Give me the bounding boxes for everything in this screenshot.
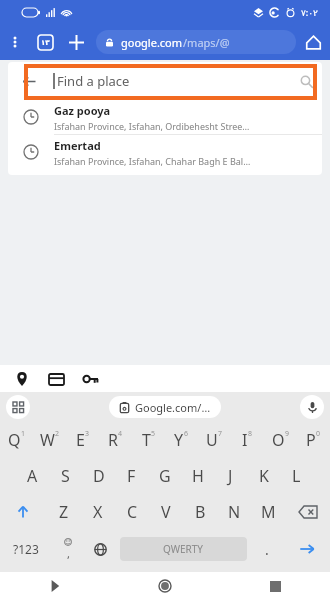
staticText: G — [159, 465, 171, 487]
staticText: F — [127, 465, 136, 487]
button[interactable]: P — [297, 422, 330, 458]
button[interactable]: B — [183, 494, 217, 530]
staticText: Z — [59, 501, 69, 523]
button[interactable]: Voice input — [300, 395, 324, 419]
staticText: 7 — [218, 429, 223, 439]
button[interactable]: google.com — [96, 30, 296, 54]
staticText: Isfahan Province, Isfahan, Chahar Bagh E… — [54, 155, 251, 167]
staticText: I — [242, 429, 248, 451]
staticText: P — [306, 429, 316, 451]
staticText: D — [93, 465, 105, 487]
button[interactable]: Search — [294, 69, 318, 93]
staticText: ?123 — [13, 541, 39, 557]
button[interactable]: O — [264, 422, 297, 458]
staticText: ۱۳ — [41, 39, 50, 47]
button[interactable]: K — [247, 458, 280, 494]
staticText: 1 — [21, 429, 26, 439]
button[interactable]: Passwords — [78, 367, 102, 391]
button[interactable]: Back — [18, 70, 40, 92]
staticText: 2 — [55, 429, 60, 439]
button[interactable]: V — [149, 494, 183, 530]
button[interactable]: R — [99, 422, 132, 458]
staticText: Isfahan Province, Isfahan, Ordibehesht S… — [54, 120, 250, 132]
button[interactable]: Shift — [0, 494, 46, 530]
button[interactable]: Payment methods — [44, 367, 68, 391]
button[interactable]: G — [148, 458, 181, 494]
button[interactable]: Emertad — [8, 135, 322, 169]
staticText: 3 — [85, 429, 90, 439]
staticText: QWERTY — [163, 542, 204, 556]
staticText: U — [206, 429, 218, 451]
staticText: B — [195, 501, 206, 523]
button[interactable]: X — [81, 494, 115, 530]
button[interactable]: Tabs — [30, 27, 60, 57]
staticText: Find a place — [57, 72, 130, 90]
button[interactable]: Home — [110, 572, 220, 600]
staticText: W — [40, 429, 55, 451]
button[interactable]: J — [214, 458, 247, 494]
button[interactable]: ?123 — [0, 530, 51, 568]
button[interactable]: Backspace — [285, 494, 330, 530]
button[interactable]: W — [33, 422, 66, 458]
button[interactable]: Home — [296, 25, 330, 59]
staticText: M — [261, 501, 276, 523]
button[interactable]: Google.com/… — [109, 396, 221, 418]
staticText: 4 — [118, 429, 123, 439]
staticText: 6 — [184, 429, 189, 439]
staticText: O — [272, 429, 285, 451]
staticText: K — [259, 465, 269, 487]
staticText: ۷:۰۲ — [301, 6, 318, 18]
staticText: C — [127, 501, 138, 523]
staticText: Emertad — [54, 138, 101, 153]
button[interactable]: H — [181, 458, 214, 494]
staticText: X — [93, 501, 103, 523]
staticText: J — [228, 465, 233, 487]
button[interactable]: F — [115, 458, 148, 494]
button[interactable]: More options — [0, 27, 30, 57]
staticText: R — [108, 429, 118, 451]
staticText: . — [265, 540, 269, 559]
button[interactable]: S — [49, 458, 82, 494]
button[interactable]: . — [250, 530, 283, 568]
button[interactable]: Q — [0, 422, 33, 458]
button[interactable]: E — [66, 422, 99, 458]
staticText: , — [67, 546, 70, 561]
staticText: 5 — [151, 429, 156, 439]
staticText: N — [228, 501, 241, 523]
button[interactable]: I — [231, 422, 264, 458]
button[interactable]: T — [132, 422, 165, 458]
button[interactable]: U — [198, 422, 231, 458]
button[interactable]: C — [115, 494, 149, 530]
staticText: google.com — [121, 35, 183, 50]
staticText: V — [161, 501, 171, 523]
button[interactable]: A — [16, 458, 49, 494]
button[interactable]: Enter — [283, 530, 330, 568]
staticText: 9 — [285, 429, 290, 439]
staticText: A — [27, 465, 38, 487]
staticText: Google.com/… — [135, 400, 211, 415]
button[interactable]: Back — [0, 572, 110, 600]
staticText: E — [76, 429, 85, 451]
staticText: Q — [8, 429, 21, 451]
button[interactable]: Z — [46, 494, 81, 530]
staticText: Y — [174, 429, 184, 451]
button[interactable]: D — [82, 458, 115, 494]
button[interactable]: N — [217, 494, 251, 530]
staticText: H — [192, 465, 204, 487]
staticText: S — [61, 465, 70, 487]
button[interactable]: Y — [165, 422, 198, 458]
button[interactable]: Keyboard options — [6, 395, 30, 419]
button[interactable]: Gaz pooya — [8, 100, 322, 134]
staticText: T — [142, 429, 151, 451]
staticText: 8 — [248, 429, 253, 439]
button[interactable]: L — [280, 458, 313, 494]
button[interactable]: New tab — [60, 26, 92, 58]
button[interactable]: QWERTY — [120, 537, 247, 561]
button[interactable]: Change language — [84, 530, 117, 568]
button[interactable]: M — [251, 494, 285, 530]
staticText: L — [292, 465, 301, 487]
button[interactable]: , — [51, 530, 84, 568]
staticText: 0 — [316, 429, 321, 439]
button[interactable]: Recent apps — [220, 572, 330, 600]
button[interactable]: Addresses — [10, 367, 34, 391]
